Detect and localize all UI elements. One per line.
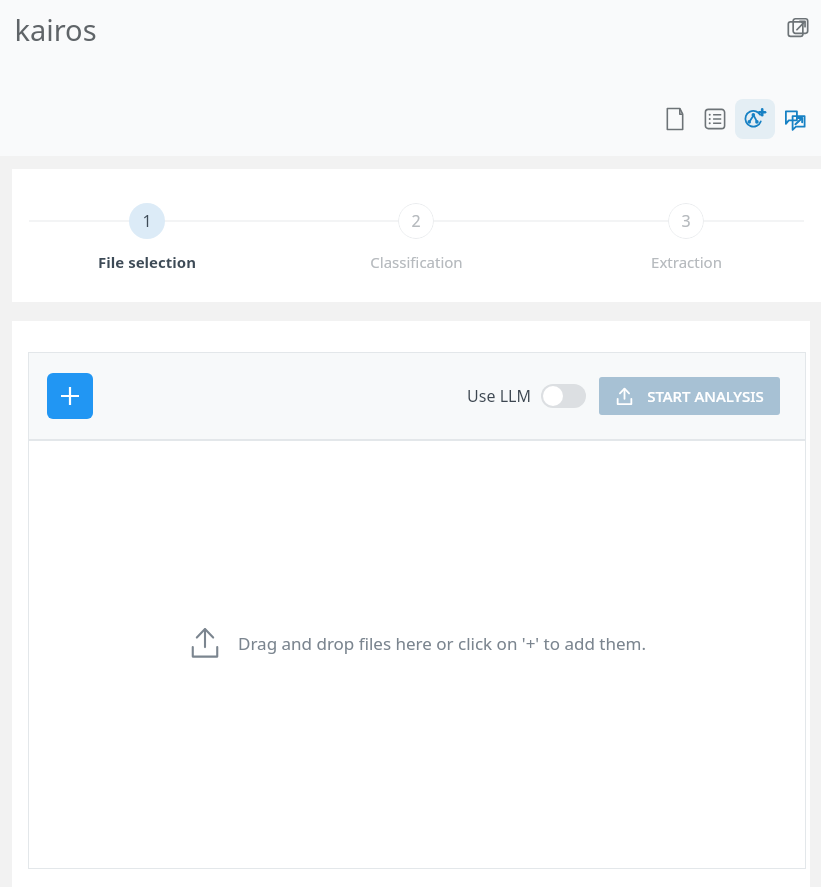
button[interactable]: Open in new window	[781, 11, 815, 45]
button[interactable]: 2	[281, 169, 551, 302]
button[interactable]: Graph analysis	[735, 99, 775, 139]
button[interactable]: List	[695, 99, 735, 139]
staticText: Use LLM	[467, 385, 531, 407]
staticText: Classification	[370, 252, 463, 272]
staticText: 2	[411, 210, 421, 232]
staticText: 3	[681, 210, 691, 232]
button[interactable]: Drag and drop files here or click on '+'…	[188, 626, 646, 660]
button[interactable]: 3	[551, 169, 821, 302]
button[interactable]: START ANALYSIS	[599, 377, 780, 415]
staticText: START ANALYSIS	[647, 386, 764, 406]
button[interactable]: 1	[12, 169, 281, 302]
button[interactable]: Document	[655, 99, 695, 139]
button[interactable]: Add files	[47, 373, 93, 419]
staticText: Drag and drop files here or click on '+'…	[238, 632, 646, 655]
staticText: Extraction	[651, 252, 722, 272]
staticText: File selection	[98, 252, 196, 272]
staticText: kairos	[14, 10, 97, 49]
button[interactable]: Use LLM	[467, 384, 586, 408]
button[interactable]: New chat	[775, 99, 815, 139]
staticText: 1	[142, 210, 152, 232]
